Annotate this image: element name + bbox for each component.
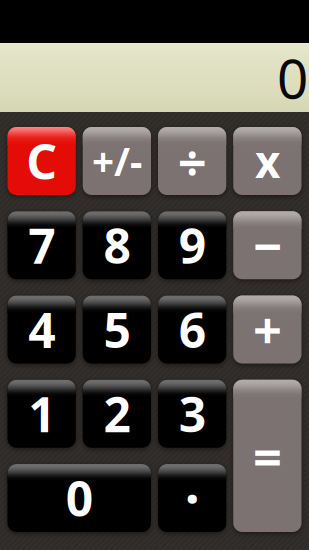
button[interactable]: 5 <box>83 295 151 363</box>
staticText: 9 <box>179 213 206 277</box>
button[interactable]: 9 <box>158 211 226 279</box>
staticText: C <box>26 129 57 193</box>
button[interactable]: Plus Minus <box>83 127 151 195</box>
button[interactable]: 2 <box>83 380 151 448</box>
button[interactable]: C <box>7 127 76 195</box>
staticText: 4 <box>28 298 55 361</box>
staticText: 1 <box>28 382 55 446</box>
button[interactable]: 3 <box>158 380 226 448</box>
staticText: 7 <box>28 213 55 277</box>
staticText: = <box>253 422 282 489</box>
button[interactable]: Decimal point <box>158 464 226 532</box>
button[interactable]: 8 <box>83 211 151 279</box>
button[interactable]: Equals <box>233 380 301 532</box>
button[interactable]: 0 <box>7 464 151 532</box>
button[interactable]: 6 <box>158 295 226 363</box>
staticText: − <box>253 212 282 279</box>
button[interactable]: 7 <box>7 211 76 279</box>
staticText: 2 <box>103 382 130 446</box>
button[interactable]: Plus <box>233 295 301 363</box>
staticText: ÷ <box>178 127 207 195</box>
button[interactable]: 4 <box>7 295 76 363</box>
staticText: · <box>185 463 200 533</box>
staticText: 5 <box>103 298 130 361</box>
staticText: 3 <box>179 382 206 446</box>
staticText: 6 <box>179 298 206 361</box>
staticText: +/- <box>92 135 142 187</box>
button[interactable]: Divide <box>158 127 226 195</box>
button[interactable]: 1 <box>7 380 76 448</box>
staticText: 0 <box>66 466 93 530</box>
staticText: 8 <box>103 213 130 277</box>
staticText: x <box>255 132 280 190</box>
button[interactable]: Multiply <box>233 127 301 195</box>
button[interactable]: Minus <box>233 211 301 279</box>
staticText: 0 <box>277 41 308 114</box>
staticText: + <box>253 296 282 363</box>
